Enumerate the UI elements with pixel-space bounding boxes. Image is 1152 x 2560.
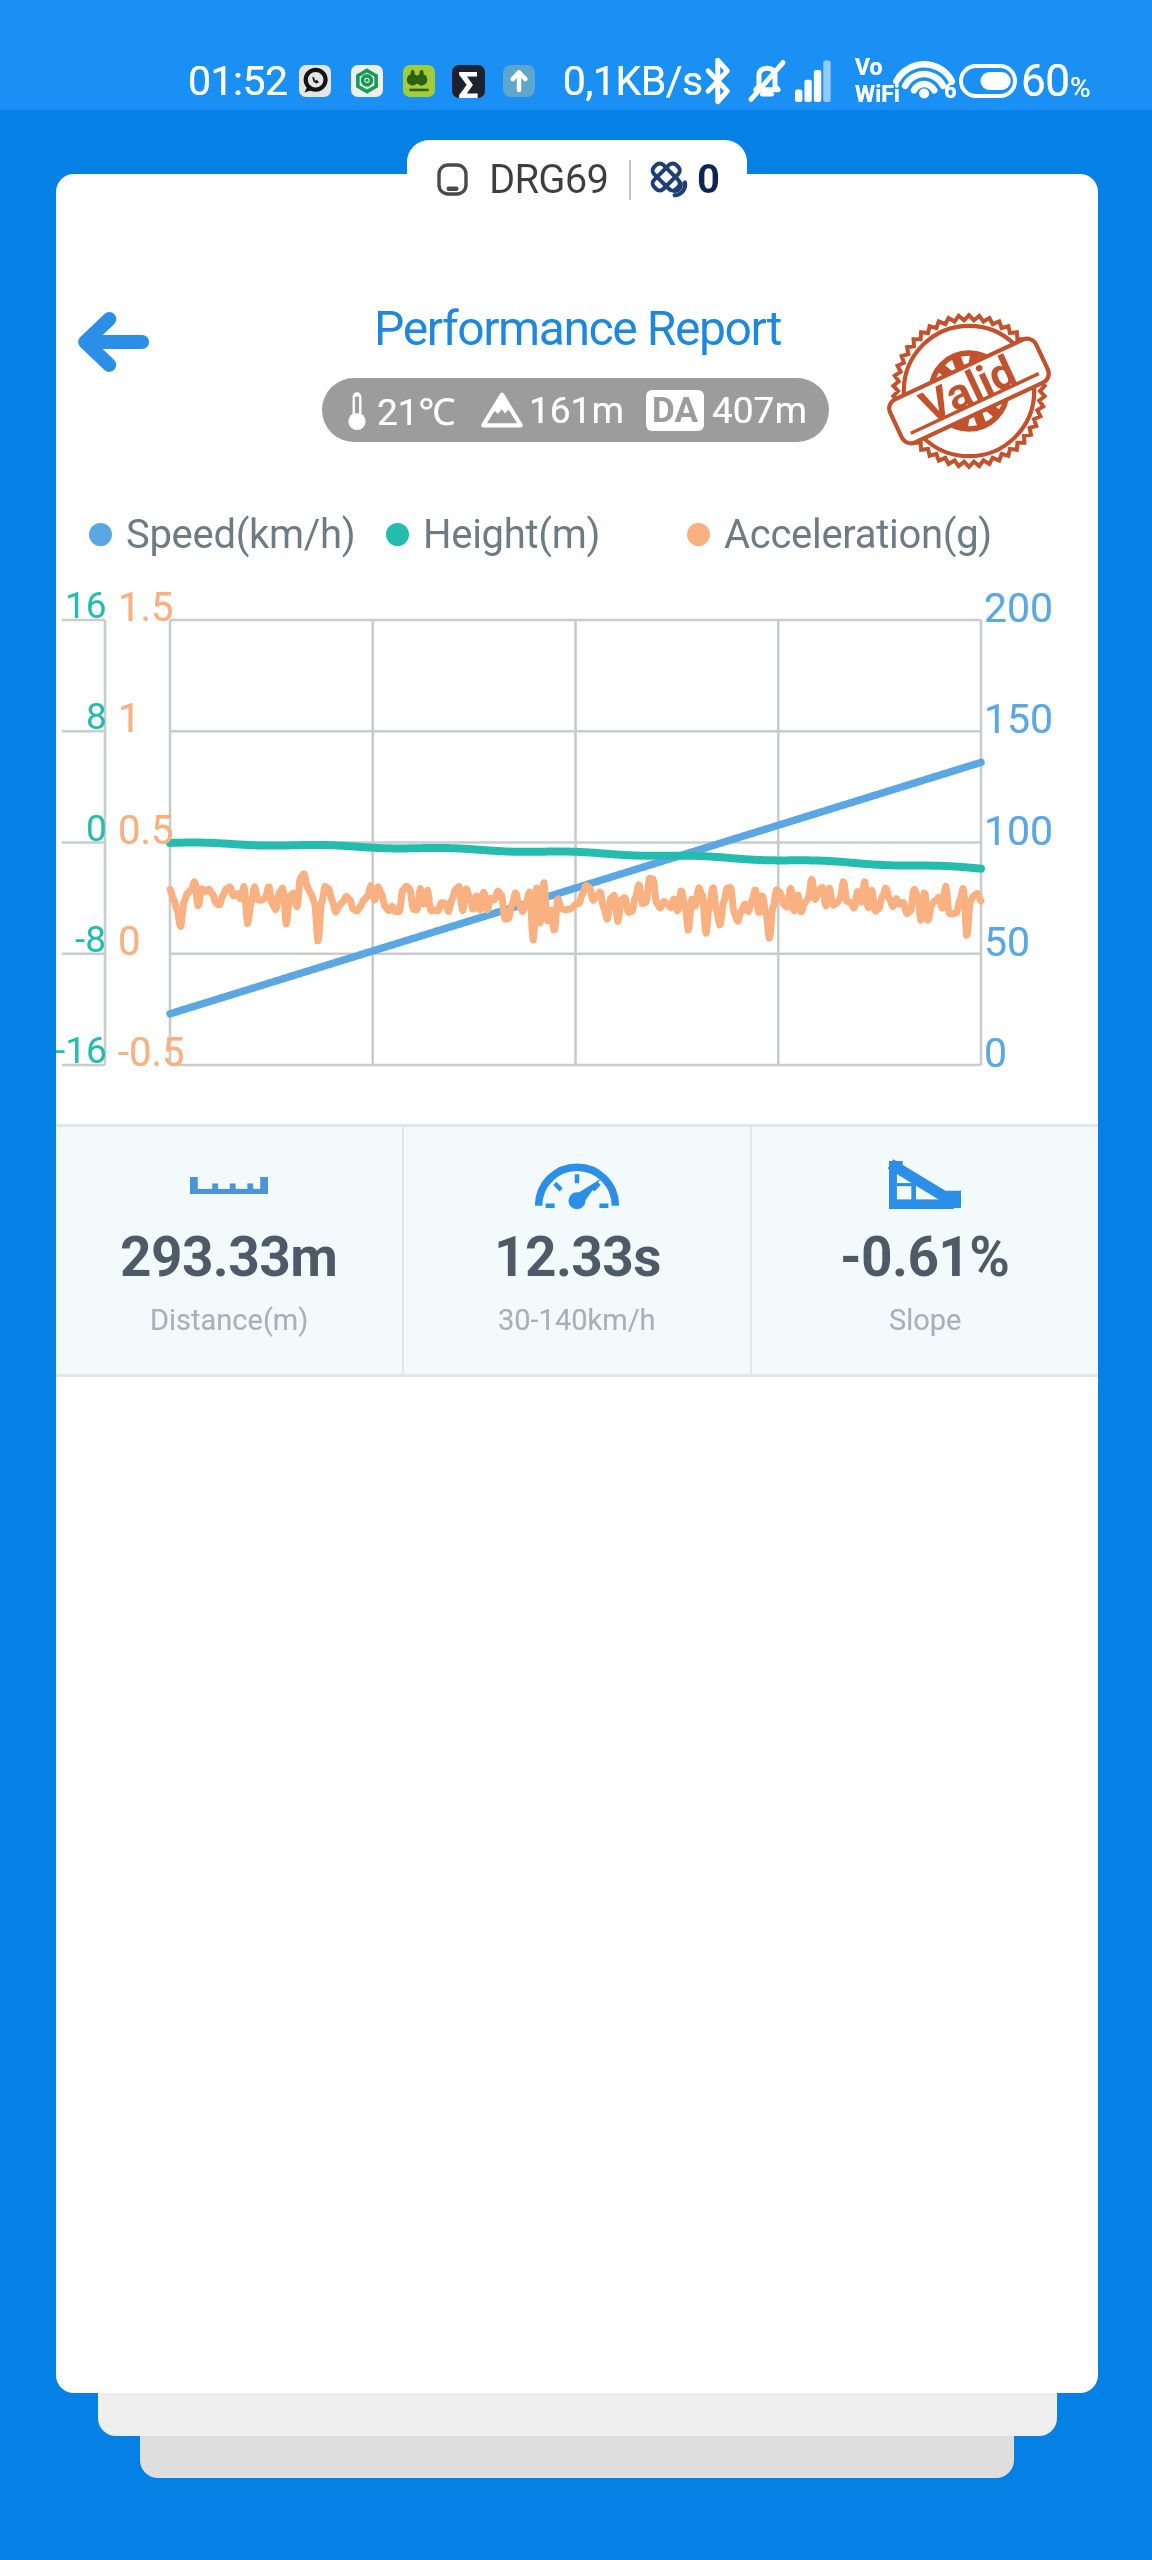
button[interactable]: Valid run stamp bbox=[890, 312, 1048, 470]
staticText: 12.33s bbox=[494, 1225, 661, 1289]
staticText: Vo bbox=[855, 54, 883, 81]
staticText: DA bbox=[652, 390, 698, 431]
staticText: 1 bbox=[118, 695, 141, 742]
staticText: 01:52 bbox=[188, 57, 288, 105]
button[interactable]: 293.33m bbox=[56, 1127, 402, 1374]
staticText: 60 bbox=[1021, 55, 1070, 107]
staticText: Performance Report bbox=[374, 300, 781, 356]
staticText: 0 bbox=[86, 807, 107, 850]
staticText: Distance(m) bbox=[150, 1303, 309, 1337]
staticText: DRG69 bbox=[489, 156, 609, 203]
staticText: Acceleration(g) bbox=[724, 511, 992, 558]
staticText: 200 bbox=[984, 584, 1054, 632]
staticText: 161m bbox=[529, 389, 624, 432]
staticText: % bbox=[1070, 71, 1091, 104]
button[interactable]: Connected device DRG69, 0 satellites bbox=[407, 140, 747, 218]
button[interactable]: -0.61% bbox=[752, 1127, 1098, 1374]
button[interactable]: 21℃ bbox=[322, 378, 829, 442]
staticText: 6 bbox=[944, 78, 957, 104]
staticText: 0 bbox=[697, 156, 720, 203]
staticText: 0.5 bbox=[118, 807, 174, 854]
staticText: 8 bbox=[86, 695, 107, 738]
button[interactable]: 12.33s bbox=[404, 1127, 750, 1374]
staticText: 21℃ bbox=[377, 385, 456, 435]
staticText: -0.5 bbox=[118, 1029, 185, 1076]
staticText: Σ bbox=[458, 65, 479, 98]
staticText: -16 bbox=[56, 1029, 107, 1072]
staticText: 1.5 bbox=[118, 584, 174, 631]
staticText: 0 bbox=[984, 1029, 1008, 1077]
staticText: Speed(km/h) bbox=[126, 511, 356, 558]
staticText: Valid bbox=[912, 344, 1024, 434]
staticText: 0,1KB/s bbox=[563, 57, 703, 105]
button[interactable]: Back bbox=[57, 286, 169, 398]
staticText: 30-140km/h bbox=[498, 1303, 656, 1337]
staticText: 16 bbox=[65, 584, 107, 627]
staticText: 293.33m bbox=[120, 1225, 338, 1289]
staticText: -0.61% bbox=[840, 1225, 1010, 1289]
staticText: Height(m) bbox=[423, 511, 601, 558]
staticText: -8 bbox=[75, 918, 107, 961]
staticText: WiFi bbox=[855, 81, 900, 108]
staticText: 0 bbox=[118, 918, 141, 965]
staticText: 50 bbox=[984, 918, 1031, 966]
staticText: 407m bbox=[712, 389, 807, 432]
staticText: 100 bbox=[984, 807, 1054, 855]
staticText: 150 bbox=[984, 695, 1054, 743]
staticText: Slope bbox=[889, 1303, 962, 1337]
